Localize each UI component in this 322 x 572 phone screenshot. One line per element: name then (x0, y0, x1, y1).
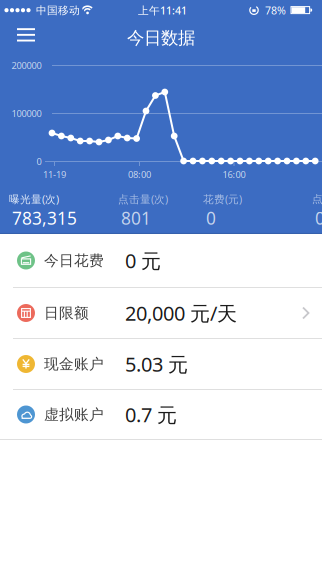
staticText: 0 (315, 206, 322, 229)
staticText: 200000 (11, 59, 41, 72)
staticText: 点击单价 (312, 192, 322, 205)
staticText: 0 (206, 206, 216, 229)
staticText: 中国移动 (36, 4, 80, 17)
staticText: 虚拟账户 (44, 405, 104, 423)
staticText: 现金账户 (44, 355, 104, 373)
button[interactable]: 日限额 (0, 288, 322, 338)
staticText: 20,000 元/天 (125, 300, 237, 326)
staticText: 日限额 (44, 304, 89, 322)
button[interactable]: 现金账户 (0, 339, 322, 389)
staticText: 0.7 元 (125, 401, 177, 428)
staticText: 5.03 元 (125, 351, 188, 377)
staticText: 上午11:41 (138, 3, 187, 17)
staticText: 16:00 (222, 168, 245, 181)
staticText: 今日花费 (44, 251, 104, 269)
button[interactable]: 虚拟账户 (0, 390, 322, 439)
staticText: 今日数据 (127, 27, 195, 49)
staticText: 100000 (11, 107, 41, 120)
staticText: 曝光量(次) (9, 192, 59, 206)
staticText: 783,315 (12, 206, 77, 229)
staticText: 点击量(次) (118, 192, 168, 206)
button[interactable]: 点击量(次) (121, 190, 199, 228)
staticText: 花费(元) (203, 192, 242, 206)
button[interactable]: Menu (0, 0, 52, 48)
staticText: 78% (265, 3, 286, 17)
staticText: 08:00 (128, 168, 151, 181)
button[interactable]: 曝光量(次) (12, 190, 112, 228)
button[interactable]: 今日花费 (0, 234, 322, 287)
staticText: 0 (36, 155, 41, 168)
staticText: 801 (121, 206, 151, 229)
button[interactable]: 花费(元) (206, 190, 276, 228)
staticText: 0 元 (125, 247, 161, 274)
staticText: 11-19 (43, 168, 66, 181)
